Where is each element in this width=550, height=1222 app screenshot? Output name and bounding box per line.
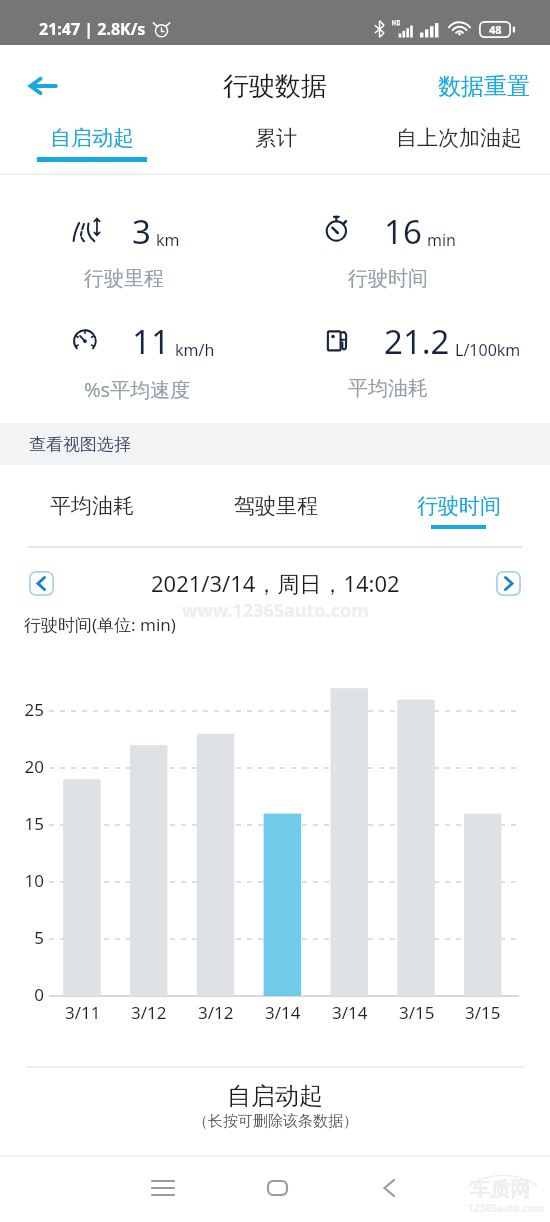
staticText: 48 [489, 22, 502, 37]
staticText: 自启动起 [50, 125, 134, 151]
staticText: 11 [132, 319, 170, 364]
staticText: 平均油耗 [50, 493, 134, 519]
staticText: 车质网 [470, 1177, 530, 1202]
staticText: min [427, 229, 456, 251]
staticText: 2021/3/14，周日，14:02 [151, 568, 400, 598]
staticText: 查看视图选择 [29, 434, 131, 455]
staticText: 行驶时间 [348, 266, 428, 291]
staticText: 3/15 [399, 1001, 435, 1024]
button[interactable]: 数据重置 [438, 72, 530, 101]
button[interactable]: Back [363, 1162, 415, 1214]
button[interactable]: 自上次加油起 [367, 114, 550, 169]
button[interactable]: 自启动起 [0, 114, 184, 169]
staticText: （长按可删除该条数据） [193, 1112, 358, 1131]
staticText: %s平均速度 [84, 376, 191, 403]
staticText: 行驶时间 [417, 493, 501, 519]
staticText: 3 [132, 209, 151, 254]
button[interactable]: 行驶时间 [367, 469, 550, 541]
button[interactable]: Recent apps [137, 1162, 189, 1214]
staticText: 自启动起 [227, 1081, 323, 1111]
staticText: 3/14 [332, 1001, 368, 1024]
staticText: 3/12 [198, 1001, 234, 1024]
button[interactable]: 平均油耗 [0, 469, 184, 541]
staticText: 累计 [255, 125, 297, 151]
staticText: 21:47 | 2.8K/s [39, 18, 146, 40]
staticText: 15 [24, 812, 44, 835]
staticText: 25 [24, 698, 44, 721]
staticText: 20 [24, 755, 44, 778]
staticText: 3/12 [131, 1001, 167, 1024]
staticText: L/100km [455, 339, 521, 361]
staticText: 0 [34, 983, 44, 1006]
button[interactable]: Previous day [29, 571, 54, 596]
staticText: 驾驶里程 [234, 493, 318, 519]
staticText: 行驶里程 [84, 266, 164, 291]
button[interactable]: 驾驶里程 [184, 469, 367, 541]
button[interactable]: Back [16, 59, 70, 113]
staticText: 3/11 [65, 1001, 101, 1024]
staticText: www.12365auto.com [182, 598, 369, 623]
staticText: 行驶数据 [223, 70, 327, 103]
button[interactable]: Next day [496, 571, 521, 596]
staticText: km/h [175, 339, 215, 361]
staticText: 16 [384, 209, 422, 254]
staticText: 3/14 [265, 1001, 301, 1024]
staticText: 3/15 [465, 1001, 501, 1024]
staticText: km [156, 229, 180, 251]
staticText: 5 [34, 926, 44, 949]
staticText: 10 [24, 869, 44, 892]
staticText: 数据重置 [438, 72, 530, 101]
staticText: 12365auto.com [468, 1201, 544, 1215]
staticText: 平均油耗 [348, 376, 428, 401]
staticText: 21.2 [384, 319, 450, 364]
staticText: 行驶时间(单位: min) [24, 613, 176, 636]
button[interactable]: Home [251, 1162, 303, 1214]
button[interactable]: 累计 [184, 114, 367, 169]
staticText: 自上次加油起 [396, 125, 522, 151]
